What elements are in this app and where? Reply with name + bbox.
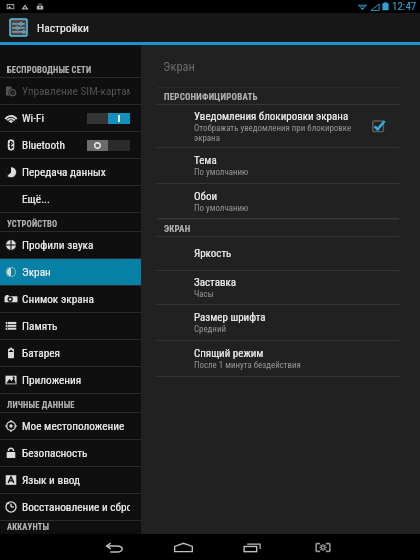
staticText: Часы: [194, 289, 214, 299]
button[interactable]: Яркость: [141, 237, 420, 270]
button[interactable]: Ещё...: [0, 186, 141, 212]
staticText: Bluetooth: [22, 139, 65, 152]
staticText: По умолчанию: [194, 203, 249, 213]
button[interactable]: Безопасность: [0, 440, 141, 466]
button[interactable]: Язык и ввод: [0, 467, 141, 493]
button[interactable]: Уведомления блокировки экрана: [141, 105, 420, 147]
staticText: Wi-Fi: [22, 112, 45, 125]
staticText: Снимок экрана: [22, 293, 94, 306]
staticText: Язык и ввод: [22, 474, 81, 487]
staticText: Средний: [194, 324, 226, 334]
staticText: Ещё...: [22, 193, 51, 206]
button[interactable]: Память: [0, 313, 141, 339]
staticText: Безопасность: [22, 447, 88, 460]
staticText: Управление SIM-картами: [22, 85, 130, 98]
staticText: БЕСПРОВОДНЫЕ СЕТИ: [7, 65, 92, 75]
staticText: Мое местоположение: [22, 420, 125, 433]
staticText: По умолчанию: [194, 167, 249, 177]
staticText: Передача данных: [22, 166, 106, 179]
staticText: Спящий режим: [194, 347, 264, 360]
staticText: После 1 минута бездействия: [194, 360, 301, 370]
button[interactable]: Back: [94, 534, 134, 560]
button[interactable]: Профили звука: [0, 232, 141, 258]
button[interactable]: Home: [163, 534, 203, 560]
button[interactable]: Передача данных: [0, 159, 141, 185]
button[interactable]: Батарея: [0, 340, 141, 366]
staticText: ЭКРАН: [164, 224, 191, 235]
button[interactable]: Мое местоположение: [0, 413, 141, 439]
staticText: Яркость: [194, 247, 232, 260]
button[interactable]: Управление SIM-картами: [0, 78, 141, 104]
staticText: Размер шрифта: [194, 311, 266, 324]
button[interactable]: Тема: [141, 148, 420, 183]
staticText: Восстановление и сброс: [22, 501, 130, 514]
button[interactable]: Bluetooth: [0, 132, 141, 158]
staticText: Профили звука: [22, 239, 94, 252]
staticText: Заставка: [194, 276, 236, 289]
staticText: Экран: [22, 266, 51, 279]
button[interactable]: Приложения: [0, 367, 141, 393]
button[interactable]: Screenshot: [303, 534, 343, 560]
button[interactable]: Восстановление и сброс: [0, 494, 141, 520]
staticText: Обои: [194, 190, 218, 203]
button[interactable]: Спящий режим: [141, 341, 420, 376]
staticText: ПЕРСОНИФИЦИРОВАТЬ: [164, 92, 258, 103]
button[interactable]: Recent apps: [232, 534, 272, 560]
staticText: Приложения: [22, 374, 82, 387]
staticText: ЛИЧНЫЕ ДАННЫЕ: [7, 400, 75, 410]
button[interactable]: Wi-Fi: [0, 105, 141, 131]
button[interactable]: Заставка: [141, 271, 420, 304]
staticText: Батарея: [22, 347, 60, 360]
staticText: 12:47: [392, 0, 417, 13]
button[interactable]: Обои: [141, 184, 420, 218]
staticText: Память: [22, 320, 58, 333]
staticText: Настройки: [37, 21, 89, 35]
button[interactable]: Экран: [0, 259, 141, 285]
staticText: Уведомления блокировки экрана: [194, 110, 349, 123]
staticText: АККАУНТЫ: [7, 522, 50, 532]
staticText: УСТРОЙСТВО: [7, 219, 58, 229]
staticText: Экран: [163, 59, 195, 74]
button[interactable]: Размер шрифта: [141, 305, 420, 340]
staticText: Отображать уведомления при блокировке эк…: [194, 123, 361, 143]
button[interactable]: Снимок экрана: [0, 286, 141, 312]
staticText: Тема: [194, 154, 217, 167]
